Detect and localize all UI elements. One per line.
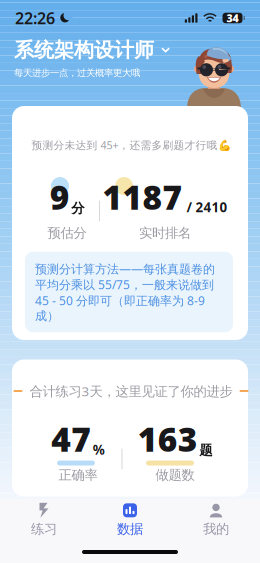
staticText: 34 xyxy=(226,11,238,25)
button[interactable]: 系统架构设计师 xyxy=(14,37,246,63)
staticText: 9 xyxy=(50,175,70,219)
staticText: 系统架构设计师 xyxy=(14,38,154,62)
staticText: 练习 xyxy=(31,521,57,537)
staticText: 数据 xyxy=(117,521,143,537)
staticText: 每天进步一点，过关概率更大哦 xyxy=(14,67,140,79)
staticText: 正确率 xyxy=(58,467,97,483)
staticText: 合计练习3天，这里见证了你的进步 xyxy=(29,382,232,400)
staticText: 1187 xyxy=(102,175,182,219)
staticText: 163 xyxy=(138,417,198,461)
button[interactable]: 练习 xyxy=(1,502,87,538)
staticText: 我的 xyxy=(203,521,229,537)
button[interactable]: 我的 xyxy=(173,502,259,538)
staticText: 分 xyxy=(71,200,84,216)
staticText: 题 xyxy=(199,442,212,458)
staticText: 22:26 xyxy=(15,7,55,29)
staticText: 预测分未达到 45+，还需多刷题才行哦💪 xyxy=(31,138,230,152)
staticText: / 2410 xyxy=(186,198,227,216)
staticText: 预估分 xyxy=(47,225,86,241)
staticText: 47 xyxy=(51,417,91,461)
staticText: 做题数 xyxy=(155,467,194,483)
staticText: 实时排名 xyxy=(139,225,191,241)
staticText: 预测分计算方法——每张真题卷的平均分乘以 55/75，一般来说做到 45 - 5… xyxy=(35,261,215,323)
staticText: % xyxy=(93,441,105,458)
button[interactable]: 数据 xyxy=(87,502,173,538)
